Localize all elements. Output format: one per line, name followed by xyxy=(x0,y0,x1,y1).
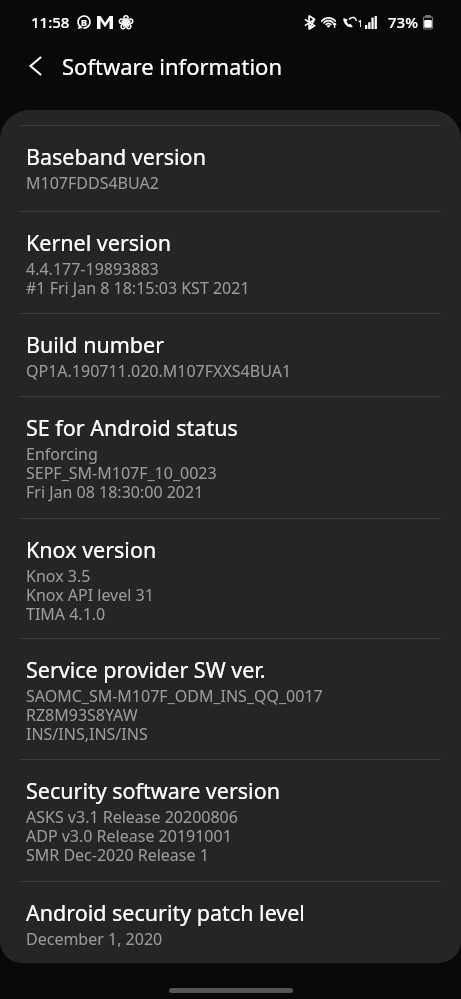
staticText: December 1, 2020 xyxy=(26,928,163,950)
button[interactable]: Android security patch level xyxy=(0,882,461,963)
staticText: Security software version xyxy=(26,776,280,805)
staticText: QP1A.190711.020.M107FXXS4BUA1 xyxy=(26,360,292,382)
staticText: Software information xyxy=(62,51,282,81)
staticText: SAOMC_SM-M107F_ODM_INS_QQ_0017 RZ8M93S8Y… xyxy=(26,685,323,745)
staticText: Android security patch level xyxy=(26,898,305,927)
staticText: M107FDDS4BUA2 xyxy=(26,172,159,194)
button[interactable]: Build number xyxy=(0,314,461,396)
staticText: 11:58 xyxy=(31,12,70,32)
staticText: Knox version xyxy=(26,535,157,564)
staticText: Kernel version xyxy=(26,228,171,257)
button[interactable]: Security software version xyxy=(0,760,461,881)
button[interactable]: SE for Android status xyxy=(0,397,461,518)
button[interactable]: Knox version xyxy=(0,519,461,638)
button[interactable]: Baseband version xyxy=(0,126,461,211)
button[interactable]: Kernel version xyxy=(0,212,461,313)
staticText: Service provider SW ver. xyxy=(26,655,266,684)
staticText: B xyxy=(81,16,87,28)
button[interactable]: Service provider SW ver. xyxy=(0,639,461,759)
button[interactable]: Back xyxy=(0,44,58,88)
staticText: Knox 3.5 Knox API level 31 TIMA 4.1.0 xyxy=(26,565,154,625)
staticText: 73% xyxy=(388,12,418,32)
staticText: Build number xyxy=(26,330,165,359)
staticText: 1 xyxy=(358,18,363,29)
staticText: 4.4.177-19893883 #1 Fri Jan 8 18:15:03 K… xyxy=(26,258,250,299)
staticText: ASKS v3.1 Release 20200806 ADP v3.0 Rele… xyxy=(26,806,238,866)
staticText: Baseband version xyxy=(26,142,206,171)
staticText: SE for Android status xyxy=(26,413,238,442)
staticText: Enforcing SEPF_SM-M107F_10_0023 Fri Jan … xyxy=(26,443,217,503)
